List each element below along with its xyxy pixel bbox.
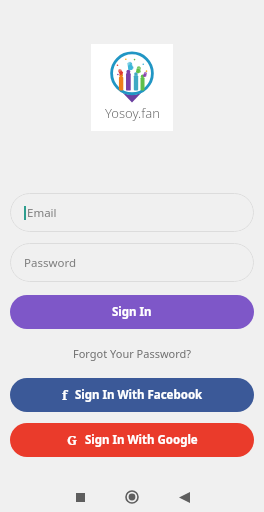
button[interactable]: f [10, 378, 254, 412]
staticText: G [67, 431, 78, 449]
button[interactable]: Recent apps [63, 482, 97, 512]
staticText: Sign In With Facebook [75, 387, 203, 403]
button[interactable]: Forgot Your Password? [67, 343, 198, 364]
staticText: Email [27, 205, 57, 221]
staticText: Forgot Your Password? [73, 346, 192, 361]
staticText: f [62, 386, 68, 404]
button[interactable]: Back [167, 482, 201, 512]
button[interactable]: Password [10, 243, 254, 282]
button[interactable]: G [10, 423, 254, 457]
button[interactable]: Home [115, 482, 149, 512]
staticText: Sign In [112, 304, 152, 320]
staticText: Password [24, 255, 77, 271]
button[interactable]: Sign In [10, 295, 254, 329]
button[interactable]: Email [10, 193, 254, 232]
staticText: Sign In With Google [85, 432, 198, 448]
staticText: Yosoy.fan [105, 104, 160, 122]
